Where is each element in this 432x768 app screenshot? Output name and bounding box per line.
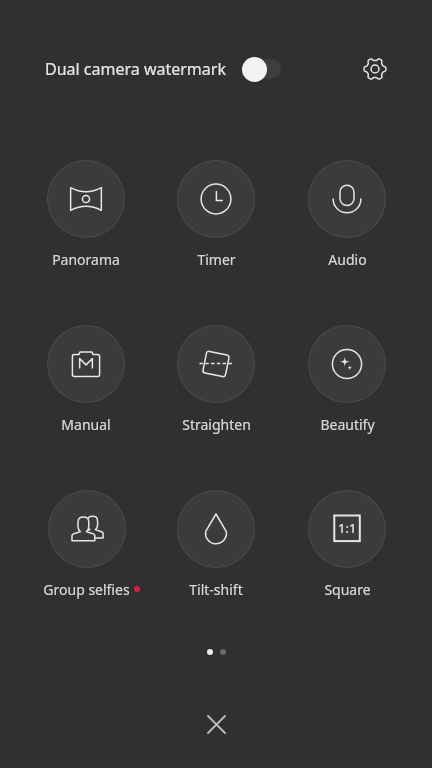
staticText: Tilt-shift bbox=[189, 580, 243, 599]
button[interactable]: Settings bbox=[353, 47, 397, 91]
staticText: Audio bbox=[328, 250, 367, 269]
staticText: Panorama bbox=[52, 250, 120, 269]
button[interactable]: Straighten bbox=[160, 325, 272, 445]
button[interactable]: Panorama bbox=[30, 160, 142, 280]
staticText: Beautify bbox=[320, 415, 375, 434]
button[interactable]: Manual bbox=[30, 325, 142, 445]
button[interactable]: Dual camera watermark bbox=[242, 55, 282, 83]
button[interactable]: Timer bbox=[160, 160, 272, 280]
button[interactable]: Group selfies bbox=[30, 490, 142, 610]
staticText: Dual camera watermark bbox=[45, 58, 226, 80]
staticText: Group selfies bbox=[43, 580, 130, 599]
staticText: Straighten bbox=[182, 415, 251, 434]
staticText: Square bbox=[324, 580, 371, 599]
button[interactable]: Beautify bbox=[291, 325, 403, 445]
staticText: Manual bbox=[61, 415, 111, 434]
button[interactable]: 1:1 bbox=[291, 490, 403, 610]
staticText: Timer bbox=[197, 250, 236, 269]
staticText: 1:1 bbox=[338, 519, 357, 537]
button[interactable]: Close bbox=[192, 700, 240, 748]
button[interactable]: Audio bbox=[291, 160, 403, 280]
button[interactable]: Page 2 bbox=[220, 649, 226, 655]
button[interactable]: Page 1 bbox=[207, 649, 213, 655]
button[interactable]: Tilt-shift bbox=[160, 490, 272, 610]
